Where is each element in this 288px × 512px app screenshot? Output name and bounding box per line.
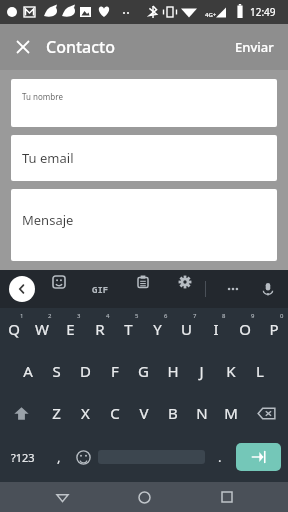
staticText: 4 [106,312,110,320]
staticText: Tu nombre [22,91,63,102]
staticText: D [80,361,91,381]
button[interactable]: C [100,392,129,434]
button[interactable]: V [129,392,158,434]
staticText: . [218,448,222,466]
staticText: O [239,319,251,339]
staticText: 8 [222,312,226,320]
staticText: Z [52,403,61,423]
button[interactable]: Recientes [206,482,248,512]
staticText: A [23,361,33,381]
staticText: ?123 [11,450,35,465]
staticText: V [139,403,149,423]
button[interactable]: H [158,350,187,392]
staticText: C [110,403,120,423]
staticText: 1 [20,312,24,320]
staticText: B [168,403,178,423]
button[interactable]: N [187,392,216,434]
button[interactable]: B [158,392,187,434]
button[interactable]: Atrás [9,276,35,302]
staticText: 7 [193,312,197,320]
button[interactable]: Mensaje [11,189,277,261]
staticText: 5 [135,312,139,320]
button[interactable]: R [85,308,114,350]
button[interactable]: F [100,350,129,392]
staticText: T [124,319,133,339]
button[interactable]: M [216,392,245,434]
button[interactable]: Ajustes [173,270,197,294]
staticText: Enviar [235,38,274,56]
button[interactable]: Cerrar [10,34,36,60]
button[interactable]: W [28,308,56,350]
staticText: Y [153,319,162,339]
staticText: K [226,361,236,381]
staticText: P [269,319,279,339]
staticText: 6 [164,312,168,320]
button[interactable]: J [187,350,216,392]
button[interactable]: Mayúsculas [0,392,42,434]
button[interactable]: Atrás [41,482,83,512]
button[interactable]: Más opciones [222,278,244,300]
staticText: F [111,361,119,381]
button[interactable]: A [13,350,42,392]
staticText: Contacto [46,36,116,58]
staticText: J [199,361,204,381]
staticText: W [35,319,49,339]
button[interactable]: P [259,308,288,350]
button[interactable]: Entrada de voz [256,277,280,301]
staticText: R [95,319,105,339]
button[interactable]: S [42,350,71,392]
button[interactable]: G [129,350,158,392]
staticText: 0 [280,312,284,320]
staticText: G [138,361,149,381]
staticText: Q [8,319,20,339]
staticText: Mensaje [22,211,74,229]
button[interactable]: K [216,350,245,392]
staticText: N [196,403,208,423]
staticText: I [213,319,219,339]
staticText: S [52,361,61,381]
button[interactable]: Portapapeles [131,270,155,294]
staticText: U [181,319,192,339]
button[interactable]: E [56,308,85,350]
button[interactable]: D [71,350,100,392]
staticText: H [167,361,179,381]
staticText: M [224,403,238,423]
button[interactable]: X [71,392,100,434]
staticText: 12:49 [250,5,276,19]
button[interactable]: L [245,350,274,392]
staticText: X [81,403,90,423]
staticText: Tu email [22,149,74,167]
staticText: L [256,361,264,381]
button[interactable]: , [46,434,71,480]
button[interactable]: . [207,434,232,480]
button[interactable]: Stickers [47,270,71,294]
staticText: 3 [77,312,81,320]
button[interactable]: I [201,308,230,350]
button[interactable]: U [172,308,201,350]
button[interactable]: Borrar [245,392,288,434]
button[interactable]: Z [42,392,71,434]
button[interactable]: Emoji [71,434,96,480]
staticText: 4G+ [205,11,217,19]
staticText: E [66,319,75,339]
button[interactable]: Y [143,308,172,350]
staticText: 9 [251,312,255,320]
button[interactable]: GIF [88,279,113,299]
button[interactable]: Tu nombre [11,79,277,127]
button[interactable]: T [114,308,143,350]
button[interactable]: Tu email [11,135,277,181]
button[interactable]: Inicio [123,482,165,512]
button[interactable]: O [230,308,259,350]
button[interactable]: Enviar [236,443,281,471]
staticText: , [57,448,61,466]
button[interactable]: Q [0,308,28,350]
button[interactable]: Enviar [221,28,288,66]
staticText: 2 [48,312,52,320]
button[interactable]: ?123 [0,434,46,480]
